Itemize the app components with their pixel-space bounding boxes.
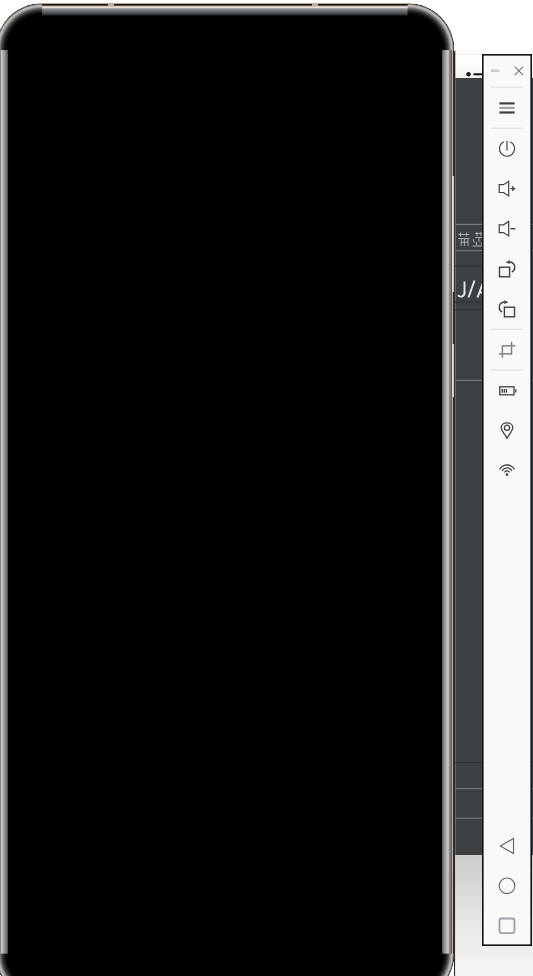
button[interactable]: Emulator controls	[482, 54, 532, 946]
